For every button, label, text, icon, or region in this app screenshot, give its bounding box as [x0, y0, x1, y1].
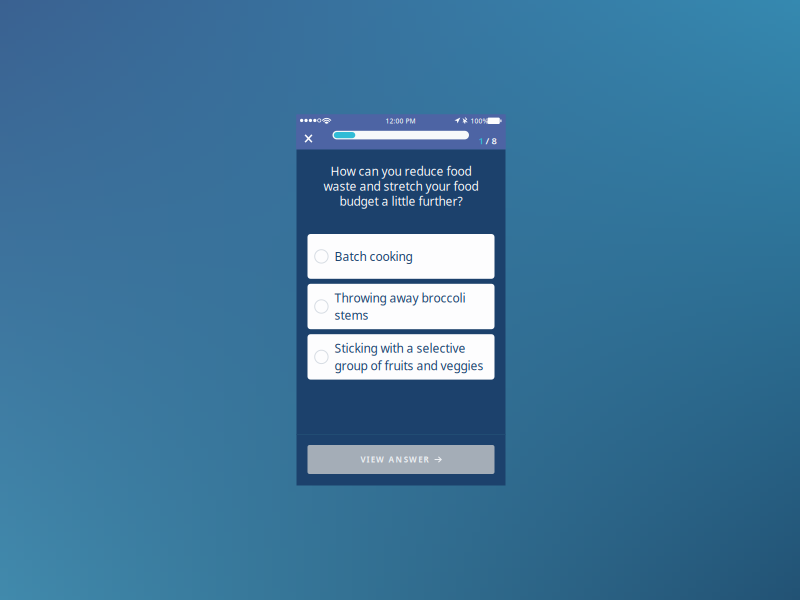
staticText: E: [371, 454, 375, 465]
staticText: 12:00 PM: [385, 117, 415, 125]
staticText: / 8: [483, 134, 496, 147]
staticText: Sticking with a selective: [334, 340, 465, 356]
staticText: V: [360, 454, 365, 465]
staticText: stems: [334, 307, 368, 323]
staticText: Throwing away broccoli: [334, 290, 465, 306]
staticText: E: [418, 454, 422, 465]
button[interactable]: Close: [296, 127, 320, 149]
staticText: Batch cooking: [334, 248, 412, 264]
button[interactable]: Batch cooking: [307, 234, 494, 279]
button[interactable]: Sticking with a selective: [307, 334, 494, 380]
staticText: R: [423, 454, 428, 465]
button[interactable]: Throwing away broccoli: [307, 284, 494, 329]
staticText: waste and stretch your food: [323, 178, 478, 194]
staticText: How can you reduce food: [330, 163, 471, 179]
staticText: S: [404, 454, 408, 465]
staticText: N: [396, 454, 403, 465]
staticText: 100%: [470, 117, 488, 125]
staticText: W: [376, 454, 384, 465]
button[interactable]: V: [307, 445, 494, 474]
staticText: W: [409, 454, 417, 465]
staticText: group of fruits and veggies: [334, 358, 483, 373]
staticText: 1: [478, 134, 483, 147]
staticText: budget a little further?: [339, 193, 462, 209]
staticText: I: [367, 454, 370, 465]
staticText: A: [388, 454, 394, 465]
